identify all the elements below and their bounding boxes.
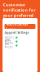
staticText: Notification Settings	[5, 21, 28, 32]
staticText: SMS Alerts	[4, 42, 12, 49]
staticText: Customise notification for your preferre…	[3, 2, 36, 34]
button[interactable]: SMS Alerts	[4, 43, 18, 47]
staticText: General Settings	[4, 31, 28, 34]
button[interactable]: Email Alerts	[4, 39, 18, 43]
button[interactable]: Push Notification	[4, 35, 18, 39]
staticText: Email Alerts	[4, 38, 12, 45]
staticText: Push Notification	[4, 32, 14, 43]
